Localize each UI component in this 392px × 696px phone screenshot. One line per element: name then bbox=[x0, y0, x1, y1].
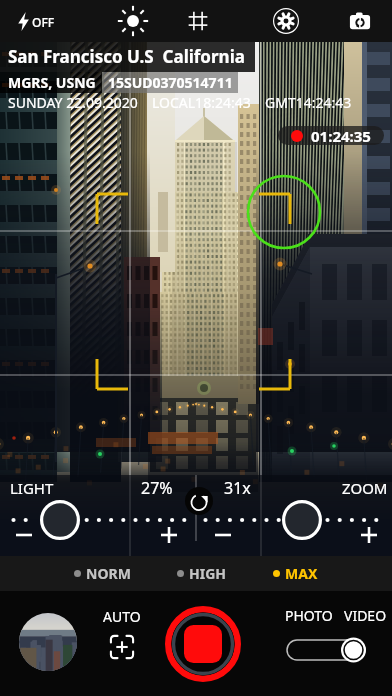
button[interactable]: Settings bbox=[268, 0, 304, 42]
button[interactable]: OFF bbox=[14, 8, 59, 35]
staticText: LIGHT bbox=[10, 478, 54, 498]
staticText: ZOOM bbox=[342, 478, 388, 498]
staticText: HIGH bbox=[189, 564, 227, 583]
staticText: MGRS, USNG bbox=[8, 73, 96, 92]
staticText: 15SUD0370514711 bbox=[108, 73, 233, 92]
staticText: 27% bbox=[141, 477, 173, 499]
button[interactable]: Photo video toggle bbox=[284, 636, 368, 664]
staticText: AUTO bbox=[103, 607, 141, 626]
button[interactable]: PHOTO bbox=[285, 606, 333, 625]
button[interactable]: Increase bbox=[158, 524, 180, 546]
button[interactable]: Switch camera bbox=[342, 0, 378, 42]
button[interactable]: Exposure bbox=[115, 0, 151, 42]
button[interactable]: Gallery bbox=[19, 613, 77, 671]
button[interactable]: VIDEO bbox=[344, 606, 387, 625]
button[interactable]: Decrease bbox=[13, 524, 35, 546]
staticText: OFF bbox=[32, 14, 55, 30]
button[interactable]: Reset zoom bbox=[185, 487, 213, 515]
button[interactable]: HIGH bbox=[175, 560, 229, 587]
staticText: NORM bbox=[86, 564, 131, 583]
staticText: 01:24:35 bbox=[311, 126, 371, 145]
button[interactable]: Stop recording bbox=[165, 606, 241, 682]
staticText: SUNDAY 22.09.2020 bbox=[8, 93, 138, 112]
button[interactable]: AUTO bbox=[97, 607, 147, 662]
button[interactable]: 01:24:35 bbox=[278, 126, 384, 145]
staticText: LOCAL18:24:43 bbox=[152, 93, 251, 112]
staticText: MAX bbox=[285, 564, 318, 583]
staticText: 31x bbox=[224, 477, 251, 499]
staticText: GMT14:24:43 bbox=[265, 93, 352, 112]
button[interactable]: Grid bbox=[180, 0, 216, 42]
button[interactable]: NORM bbox=[72, 560, 133, 587]
button[interactable]: Decrease bbox=[212, 524, 234, 546]
button[interactable]: Increase bbox=[358, 524, 380, 546]
button[interactable]: MAX bbox=[271, 560, 320, 587]
staticText: San Francisco U.S California bbox=[8, 45, 245, 68]
